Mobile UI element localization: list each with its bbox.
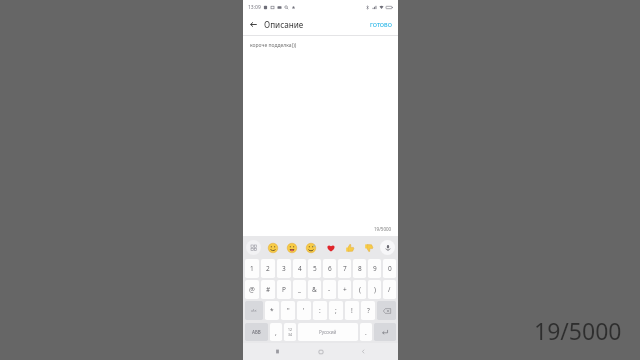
button[interactable]: ( [353, 280, 366, 299]
button[interactable]: Сердце [323, 240, 338, 255]
button[interactable]: 3 [277, 259, 291, 278]
staticText: 9 [373, 264, 377, 273]
staticText: АБВ [252, 329, 261, 335]
button[interactable]: / [383, 280, 396, 299]
button[interactable]: ; [329, 301, 343, 320]
button[interactable]: Назад [243, 14, 264, 35]
button[interactable]: 5 [308, 259, 321, 278]
button[interactable]: ? [361, 301, 375, 320]
button[interactable]: Назад [355, 343, 372, 360]
button[interactable]: 9 [368, 259, 381, 278]
button[interactable]: Последние приложения [269, 343, 286, 360]
button[interactable]: Главный экран [312, 343, 329, 360]
button[interactable]: @ [245, 280, 259, 299]
staticText: ( [359, 285, 361, 294]
staticText: 12 [288, 327, 292, 332]
button[interactable]: Р [277, 280, 291, 299]
button[interactable]: 8 [353, 259, 366, 278]
button[interactable]: Палец вниз [361, 240, 376, 255]
button[interactable]: АБВ [245, 323, 268, 341]
staticText: ) [374, 285, 376, 294]
staticText: + [343, 285, 347, 294]
staticText: 7 [343, 264, 347, 273]
staticText: 2 [266, 264, 270, 273]
staticText: Описание [264, 19, 304, 30]
staticText: ГОТОВО [370, 21, 392, 28]
staticText: 5 [313, 264, 317, 273]
button[interactable]: & [308, 280, 321, 299]
button[interactable]: Русский [298, 323, 358, 341]
staticText: Русский [319, 329, 337, 335]
staticText: =\< [251, 308, 257, 313]
staticText: " [287, 306, 290, 315]
staticText: ! [351, 306, 353, 315]
staticText: 19/5000 [374, 226, 392, 232]
staticText: / [388, 285, 391, 294]
staticText: 3 [282, 264, 286, 273]
staticText: . [365, 328, 367, 337]
staticText: 34 [288, 332, 292, 337]
button[interactable]: Эмодзи [284, 240, 299, 255]
button[interactable]: 0 [383, 259, 396, 278]
button[interactable]: Палец вверх [342, 240, 357, 255]
staticText: 13:09 [248, 4, 261, 11]
staticText: # [266, 285, 271, 294]
button[interactable]: 7 [338, 259, 351, 278]
staticText: _ [298, 285, 301, 294]
button[interactable]: Эмодзи [303, 240, 318, 255]
button[interactable]: =\< [245, 301, 263, 320]
button[interactable]: . [360, 323, 372, 341]
button[interactable]: Ввод [374, 323, 396, 341]
staticText: ' [303, 306, 305, 315]
button[interactable]: ГОТОВО [364, 17, 398, 32]
button[interactable]: * [265, 301, 279, 320]
button[interactable]: Эмодзи [246, 240, 261, 255]
staticText: 19/5000 [534, 315, 622, 346]
button[interactable]: 12 [284, 323, 296, 341]
staticText: - [328, 285, 331, 294]
button[interactable]: ' [297, 301, 311, 320]
staticText: 4 [298, 264, 302, 273]
button[interactable]: 4 [293, 259, 306, 278]
button[interactable]: - [323, 280, 336, 299]
button[interactable]: , [270, 323, 282, 341]
button[interactable]: Удалить [377, 301, 396, 320]
staticText: 8 [358, 264, 362, 273]
button[interactable]: 1 [245, 259, 259, 278]
button[interactable]: " [281, 301, 295, 320]
button[interactable]: + [338, 280, 351, 299]
staticText: короче подделка))) [250, 42, 297, 49]
staticText: ? [367, 306, 370, 315]
staticText: 1 [250, 264, 254, 273]
button[interactable]: Голосовой ввод [380, 240, 395, 255]
button[interactable]: : [313, 301, 327, 320]
staticText: @ [249, 285, 255, 294]
staticText: 0 [388, 264, 392, 273]
button[interactable]: 2 [261, 259, 275, 278]
staticText: 6 [328, 264, 332, 273]
staticText: & [312, 285, 317, 294]
button[interactable]: _ [293, 280, 306, 299]
staticText: * [270, 306, 274, 315]
staticText: , [275, 328, 277, 337]
button[interactable]: Эмодзи [265, 240, 280, 255]
button[interactable]: ! [345, 301, 359, 320]
button[interactable]: ) [368, 280, 381, 299]
staticText: ; [335, 306, 337, 315]
staticText: : [319, 306, 321, 315]
button[interactable]: # [261, 280, 275, 299]
button[interactable]: 6 [323, 259, 336, 278]
staticText: Р [282, 285, 286, 294]
